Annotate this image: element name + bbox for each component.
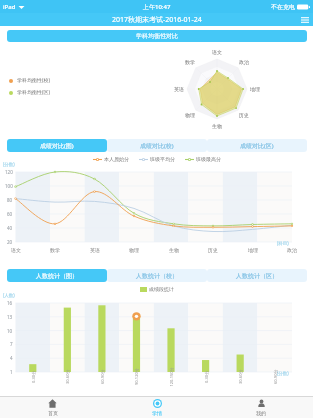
- staticText: 我的: [256, 410, 266, 416]
- staticText: 120-150分: [168, 366, 173, 386]
- staticText: 30-60分: [238, 369, 243, 384]
- staticText: 数学: [185, 59, 195, 65]
- staticText: 语文: [11, 247, 21, 253]
- staticText: 0-30分: [31, 370, 36, 383]
- staticText: 1: [10, 369, 13, 375]
- staticText: 历史: [208, 247, 218, 253]
- button[interactable]: 成绩对比(区): [207, 139, 307, 152]
- staticText: 物理: [129, 247, 139, 253]
- button[interactable]: 人数统计（校）: [107, 269, 207, 282]
- staticText: 语文: [212, 49, 222, 55]
- staticText: (分数): [3, 161, 15, 167]
- staticText: 班级最高分: [196, 156, 221, 162]
- button[interactable]: 学科均衡性对比: [7, 30, 307, 42]
- staticText: 上午10:47: [143, 3, 171, 11]
- button[interactable]: 我的: [209, 397, 313, 418]
- staticText: 成绩对比(校): [140, 142, 174, 150]
- staticText: 数学: [50, 247, 60, 253]
- button[interactable]: Menu: [297, 13, 313, 26]
- staticText: 4: [10, 355, 13, 361]
- staticText: 人数统计（图）: [36, 272, 78, 280]
- staticText: 16: [7, 300, 13, 306]
- staticText: 学科均衡性对比: [136, 32, 178, 40]
- staticText: 13: [7, 314, 13, 320]
- staticText: 不在充电: [271, 3, 295, 11]
- staticText: 历史: [239, 112, 249, 118]
- staticText: 10: [7, 328, 13, 334]
- staticText: 成绩对比(区): [240, 142, 274, 150]
- staticText: 成绩段统计: [149, 286, 174, 292]
- staticText: 班级平均分: [150, 156, 175, 162]
- staticText: 学科均衡性(校): [17, 77, 51, 84]
- staticText: 0-30分: [204, 370, 209, 383]
- staticText: 成绩对比(图): [40, 142, 74, 150]
- staticText: 20: [7, 239, 13, 245]
- staticText: 40: [7, 225, 13, 231]
- staticText: 60-90分: [100, 369, 105, 384]
- staticText: 80: [7, 197, 13, 203]
- staticText: 地理: [248, 247, 258, 253]
- staticText: 首页: [48, 410, 58, 416]
- staticText: 生物: [212, 123, 222, 129]
- staticText: 人数统计（区）: [236, 272, 278, 280]
- staticText: iPad: [3, 3, 16, 11]
- staticText: (人数): [3, 292, 15, 298]
- staticText: 政治: [287, 247, 297, 253]
- staticText: 60: [7, 211, 13, 217]
- staticText: 120: [5, 169, 13, 175]
- staticText: 地理: [250, 86, 260, 92]
- button[interactable]: 学情: [105, 397, 209, 418]
- button[interactable]: 人数统计（区）: [207, 269, 307, 282]
- staticText: (分数): [277, 370, 289, 376]
- staticText: 英语: [174, 86, 184, 92]
- staticText: (科目): [277, 240, 289, 246]
- staticText: 本人原始分: [104, 156, 129, 162]
- staticText: 60-90分: [273, 369, 278, 384]
- button[interactable]: 成绩对比(校): [107, 139, 207, 152]
- staticText: 100: [5, 183, 13, 189]
- staticText: 7: [10, 341, 13, 347]
- button[interactable]: 成绩对比(图): [7, 139, 107, 152]
- button[interactable]: 人数统计（图）: [7, 269, 107, 282]
- staticText: 物理: [185, 112, 195, 118]
- staticText: 学情: [152, 410, 162, 416]
- staticText: 90-120分: [134, 368, 139, 385]
- staticText: 政治: [239, 59, 249, 65]
- button[interactable]: 首页: [0, 397, 105, 418]
- staticText: 学科均衡性(区): [17, 89, 51, 96]
- staticText: 30-60分: [65, 369, 70, 384]
- staticText: 英语: [90, 247, 100, 253]
- staticText: 生物: [169, 247, 179, 253]
- staticText: 人数统计（校）: [136, 272, 178, 280]
- staticText: 2017秋期末考试-2016-01-24: [112, 15, 202, 25]
